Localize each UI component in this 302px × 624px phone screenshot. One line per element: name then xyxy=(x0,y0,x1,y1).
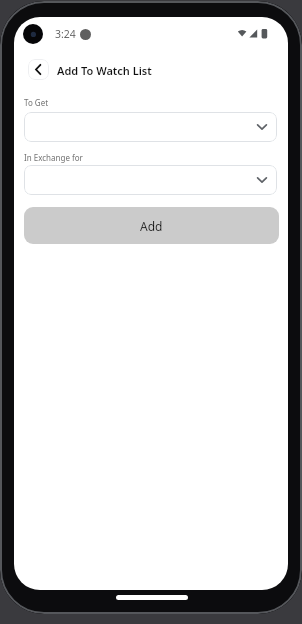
staticText: Add To Watch List xyxy=(57,63,152,78)
staticText: 3:24 xyxy=(55,27,76,41)
button[interactable]: Add xyxy=(24,207,279,244)
staticText: Add xyxy=(140,218,163,234)
button[interactable] xyxy=(24,165,277,195)
button[interactable] xyxy=(24,112,277,142)
staticText: To Get xyxy=(24,97,49,108)
button[interactable] xyxy=(28,59,49,80)
staticText: In Exchange for xyxy=(24,152,83,163)
